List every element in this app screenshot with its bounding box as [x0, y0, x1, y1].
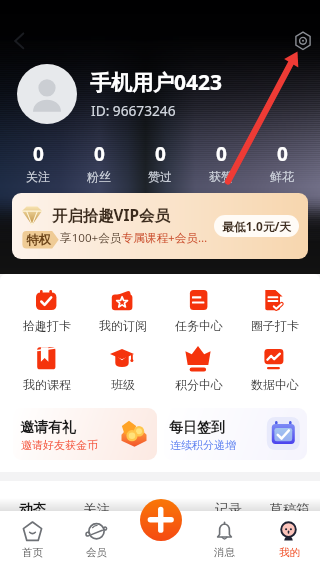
staticText: 邀请好友获金币: [21, 438, 98, 452]
button[interactable]: [164, 408, 307, 460]
button[interactable]: [8, 282, 84, 334]
button[interactable]: [8, 142, 68, 188]
staticText: 拾趣打卡: [23, 318, 71, 333]
button[interactable]: [160, 340, 236, 392]
button[interactable]: [84, 340, 160, 392]
staticText: 赞过: [148, 169, 172, 184]
staticText: 最低1.0元/天: [222, 218, 292, 234]
button[interactable]: [259, 493, 319, 514]
button[interactable]: [66, 493, 126, 514]
button[interactable]: [191, 142, 251, 188]
staticText: 动态: [19, 501, 46, 518]
staticText: 0: [94, 141, 105, 167]
staticText: 记录: [215, 501, 242, 518]
button[interactable]: [0, 514, 64, 564]
staticText: 邀请有礼: [20, 419, 76, 437]
staticText: 我的: [279, 546, 300, 559]
staticText: 关注: [26, 169, 50, 184]
staticText: 开启拾趣VIP会员: [52, 205, 170, 226]
button[interactable]: [192, 514, 256, 564]
button[interactable]: [160, 282, 236, 334]
button[interactable]: [257, 514, 320, 564]
button[interactable]: Back: [4, 26, 36, 58]
staticText: 特权: [26, 232, 51, 247]
staticText: 积分中心: [175, 377, 223, 392]
staticText: 手机用户0423: [90, 68, 223, 97]
button[interactable]: [84, 282, 160, 334]
staticText: 首页: [22, 546, 43, 559]
staticText: 获赞: [209, 169, 233, 184]
staticText: 草稿箱: [269, 501, 310, 518]
button[interactable]: Add: [140, 499, 182, 541]
button[interactable]: [236, 282, 312, 334]
staticText: 班级: [111, 377, 135, 392]
button[interactable]: [236, 340, 312, 392]
button[interactable]: [69, 142, 129, 188]
staticText: 鲜花: [270, 169, 294, 184]
button[interactable]: [130, 142, 190, 188]
staticText: 0: [216, 141, 227, 167]
button[interactable]: [64, 514, 128, 564]
staticText: 0: [33, 141, 44, 167]
staticText: 圈子打卡: [251, 318, 299, 333]
button[interactable]: 最低1.0元/天: [214, 215, 299, 237]
button[interactable]: 开启拾趣VIP会员: [12, 193, 308, 259]
button[interactable]: [8, 340, 84, 392]
button[interactable]: [13, 408, 157, 460]
staticText: 粉丝: [87, 169, 111, 184]
button[interactable]: Settings: [287, 25, 319, 57]
button[interactable]: [198, 493, 258, 514]
staticText: 每日签到: [169, 419, 225, 437]
staticText: 数据中心: [251, 377, 299, 392]
staticText: 连续积分递增: [170, 438, 236, 452]
staticText: ID: 96673246: [91, 101, 176, 120]
staticText: 0: [155, 141, 166, 167]
staticText: 关注: [83, 501, 110, 518]
button[interactable]: [252, 142, 312, 188]
button[interactable]: [17, 64, 77, 124]
staticText: 我的课程: [23, 377, 71, 392]
staticText: 消息: [214, 546, 235, 559]
button[interactable]: [2, 493, 62, 514]
staticText: 会员: [86, 546, 107, 559]
staticText: 我的订阅: [99, 318, 147, 333]
staticText: 0: [277, 141, 288, 167]
staticText: 任务中心: [175, 318, 223, 333]
staticText: 享100+会员专属课程+会员…: [60, 230, 208, 246]
